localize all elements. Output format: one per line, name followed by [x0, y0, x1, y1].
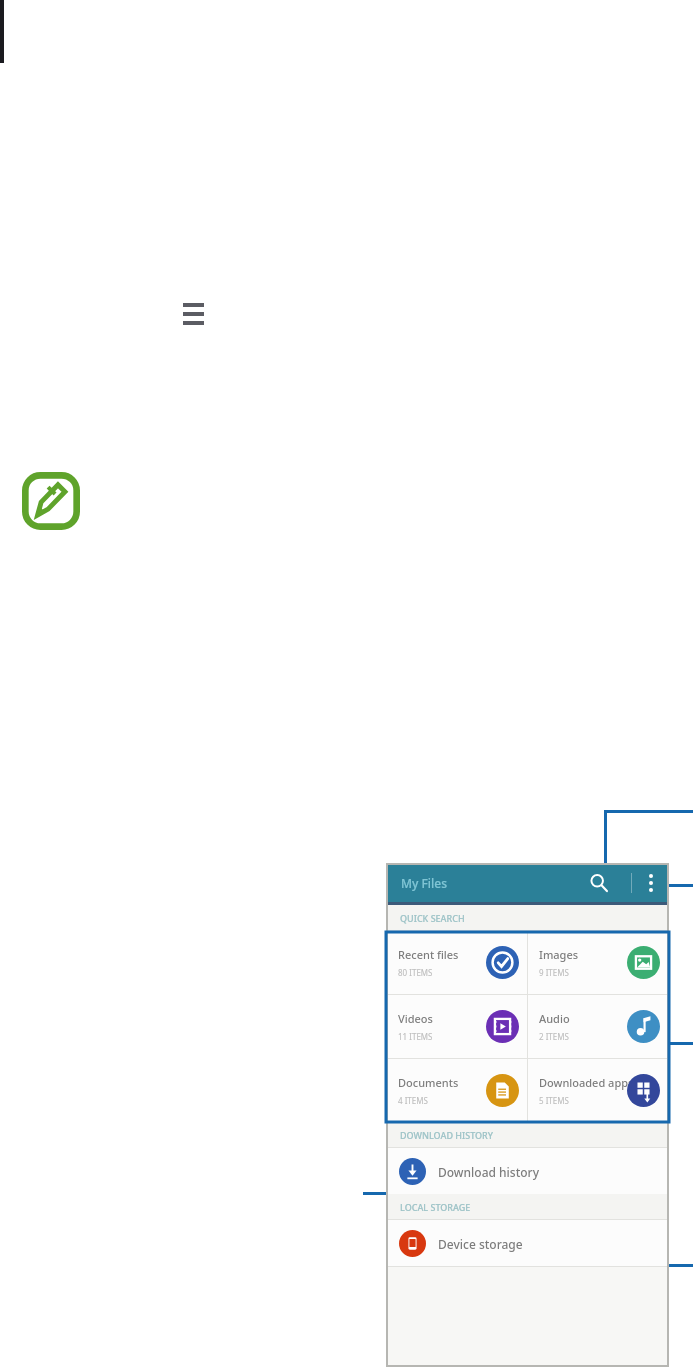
button[interactable]: More options: [634, 864, 668, 902]
button[interactable]: Download history: [387, 1148, 668, 1194]
staticText: Recent files: [398, 947, 459, 962]
button[interactable]: Audio: [528, 995, 668, 1058]
staticText: 5 ITEMS: [539, 1095, 569, 1106]
staticText: Downloaded apps: [539, 1075, 634, 1090]
staticText: 9 ITEMS: [539, 967, 569, 978]
staticText: 4 ITEMS: [398, 1095, 428, 1106]
button[interactable]: Search: [582, 866, 616, 900]
staticText: QUICK SEARCH: [400, 912, 465, 924]
staticText: Device storage: [438, 1236, 523, 1252]
button[interactable]: Device storage: [387, 1220, 668, 1266]
button[interactable]: Videos: [387, 995, 527, 1058]
staticText: Download history: [438, 1164, 540, 1180]
button[interactable]: Recent files: [387, 931, 527, 994]
button[interactable]: Downloaded apps: [528, 1059, 668, 1122]
staticText: Documents: [398, 1075, 459, 1090]
staticText: Videos: [398, 1011, 433, 1026]
staticText: My Files: [401, 875, 448, 891]
staticText: Audio: [539, 1011, 570, 1026]
staticText: 11 ITEMS: [398, 1031, 433, 1042]
button[interactable]: Documents: [387, 1059, 527, 1122]
staticText: DOWNLOAD HISTORY: [400, 1129, 494, 1141]
staticText: Images: [539, 947, 579, 962]
staticText: LOCAL STORAGE: [400, 1201, 471, 1213]
staticText: 80 ITEMS: [398, 967, 433, 978]
staticText: 2 ITEMS: [539, 1031, 569, 1042]
button[interactable]: Images: [528, 931, 668, 994]
